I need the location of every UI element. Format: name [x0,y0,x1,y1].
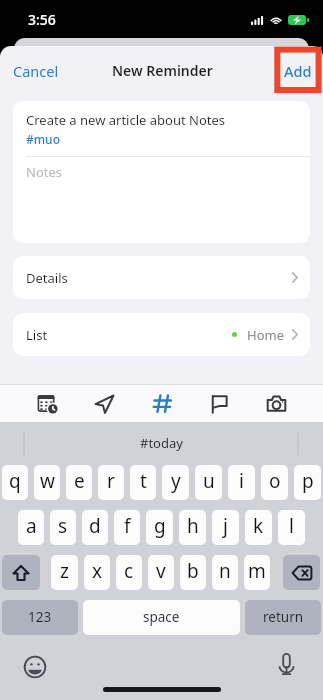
button[interactable]: w [34,465,60,500]
button[interactable]: 123 [2,600,78,635]
staticText: v [156,558,166,584]
button[interactable]: Flag [203,387,235,419]
staticText: t [140,468,147,494]
staticText: y [171,468,181,494]
button[interactable]: Dictate [275,653,298,676]
button[interactable]: Tag [146,387,178,419]
button[interactable]: o [261,465,288,500]
staticText: b [187,558,199,584]
staticText: a [26,513,37,539]
staticText: w [40,468,55,494]
button[interactable]: n [212,555,238,590]
staticText: p [302,468,314,494]
staticText: l [289,513,294,539]
staticText: z [60,558,69,584]
button[interactable]: Shift [2,555,40,590]
staticText: u [203,468,215,494]
staticText: f [124,513,131,539]
button[interactable]: g [146,510,173,545]
staticText: Cancel [13,61,59,81]
staticText: m [248,558,266,584]
staticText: o [269,468,281,494]
button[interactable]: Add [270,52,323,90]
button[interactable]: p [294,465,321,500]
button[interactable]: Location [88,387,120,419]
staticText: 3:56 [28,10,56,29]
staticText: 123 [28,608,52,626]
staticText: Details [26,269,68,287]
button[interactable]: v [148,555,174,590]
button[interactable]: h [179,510,206,545]
staticText: Add [284,61,312,81]
button[interactable]: d [82,510,108,545]
button[interactable]: Details [13,256,310,299]
button[interactable]: q [2,465,28,500]
button[interactable]: Cancel [0,52,72,90]
button[interactable]: Date and time [31,387,63,419]
staticText: List [26,326,48,344]
staticText: g [154,513,166,539]
button[interactable]: List [13,313,310,356]
staticText: d [89,513,101,539]
button[interactable]: x [84,555,110,590]
button[interactable]: l [278,510,305,545]
staticText: Notes [26,163,62,181]
button[interactable]: Emoji [23,655,46,678]
button[interactable]: e [66,465,92,500]
button[interactable]: a [18,510,44,545]
staticText: e [74,468,85,494]
button[interactable]: f [114,510,140,545]
button[interactable]: j [212,510,239,545]
button[interactable]: u [195,465,222,500]
button[interactable]: s [50,510,76,545]
staticText: #today [140,434,183,452]
staticText: n [219,558,231,584]
staticText: space [143,608,180,626]
button[interactable]: k [245,510,272,545]
button[interactable]: c [116,555,142,590]
staticText: h [187,513,199,539]
button[interactable]: t [130,465,156,500]
staticText: j [223,513,228,539]
button[interactable]: return [245,600,321,635]
staticText: c [124,558,134,584]
staticText: q [9,468,21,494]
staticText: r [107,468,115,494]
staticText: Home [247,326,284,344]
button[interactable]: y [162,465,189,500]
staticText: s [58,513,68,539]
staticText: k [253,513,264,539]
button[interactable]: z [51,555,78,590]
button[interactable]: r [98,465,124,500]
button[interactable]: b [180,555,206,590]
staticText: New Reminder [112,61,213,80]
staticText: Create a new article about Notes [26,111,226,129]
button[interactable]: Backspace [283,555,320,590]
button[interactable]: Camera [260,387,292,419]
staticText: i [239,468,244,494]
button[interactable]: i [228,465,255,500]
staticText: return [263,608,304,626]
button[interactable]: m [244,555,270,590]
button[interactable]: space [83,600,240,635]
staticText: #muo [26,131,60,147]
staticText: x [92,558,103,584]
